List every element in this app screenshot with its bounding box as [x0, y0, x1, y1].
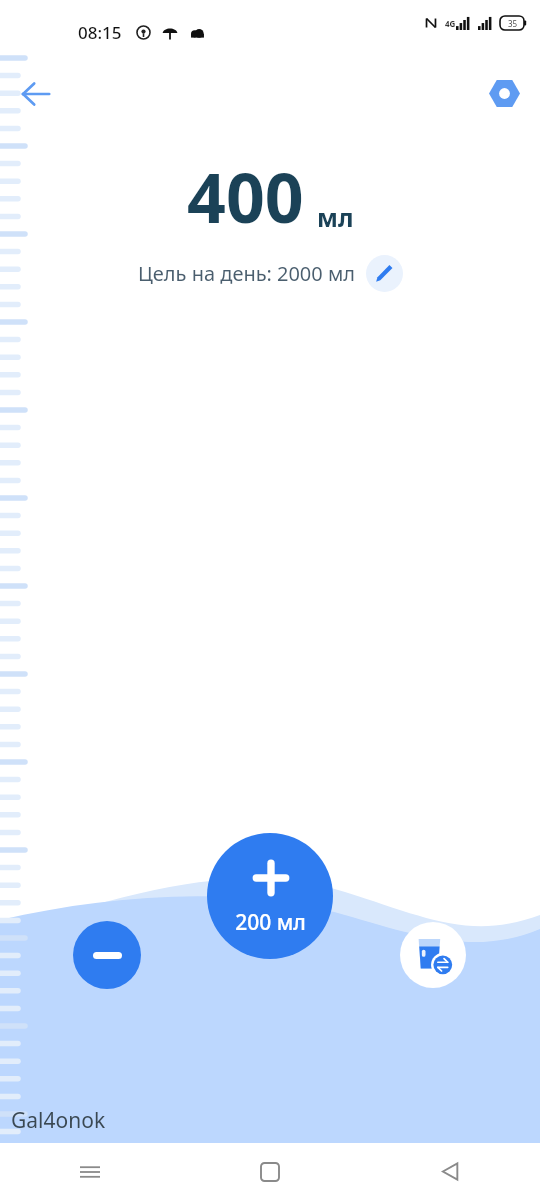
- button[interactable]: Change portion size: [400, 922, 466, 988]
- staticText: 35: [508, 18, 518, 29]
- staticText: 200 мл: [235, 908, 306, 937]
- button[interactable]: Edit goal: [366, 255, 403, 292]
- button[interactable]: Back: [360, 1143, 540, 1200]
- button[interactable]: Back: [8, 66, 64, 122]
- button[interactable]: Settings: [476, 65, 532, 121]
- button[interactable]: Subtract water: [73, 921, 141, 989]
- staticText: 08:15: [78, 21, 122, 44]
- staticText: мл: [317, 200, 354, 234]
- staticText: Цель на день: 2000 мл: [138, 260, 356, 287]
- button[interactable]: Recents: [0, 1143, 180, 1200]
- button[interactable]: 200 мл: [207, 833, 333, 959]
- staticText: 400: [187, 150, 304, 243]
- staticText: 4G: [445, 18, 456, 29]
- staticText: Gal4onok: [11, 1106, 106, 1135]
- button[interactable]: Home: [180, 1143, 360, 1200]
